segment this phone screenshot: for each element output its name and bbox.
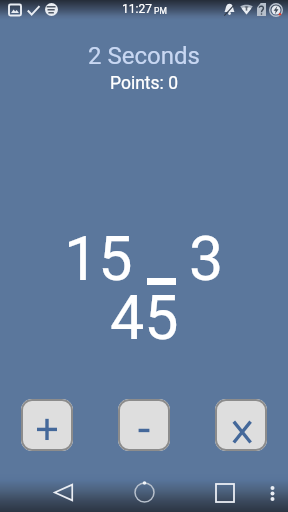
button[interactable]: Back bbox=[42, 473, 84, 512]
staticText: 2 Seconds bbox=[88, 42, 200, 70]
staticText: 3 bbox=[189, 223, 224, 294]
button[interactable]: + bbox=[21, 399, 73, 451]
staticText: 11:27 bbox=[122, 2, 152, 16]
button[interactable]: More options bbox=[258, 479, 286, 507]
button[interactable]: Home bbox=[123, 473, 165, 512]
button[interactable]: - bbox=[118, 399, 170, 451]
staticText: Points: 0 bbox=[110, 73, 179, 94]
button[interactable]: Recents bbox=[204, 473, 246, 512]
staticText: 15 bbox=[64, 223, 133, 294]
button[interactable]: X bbox=[215, 399, 267, 451]
staticText: 45 bbox=[110, 282, 179, 353]
staticText: PM bbox=[152, 6, 167, 16]
